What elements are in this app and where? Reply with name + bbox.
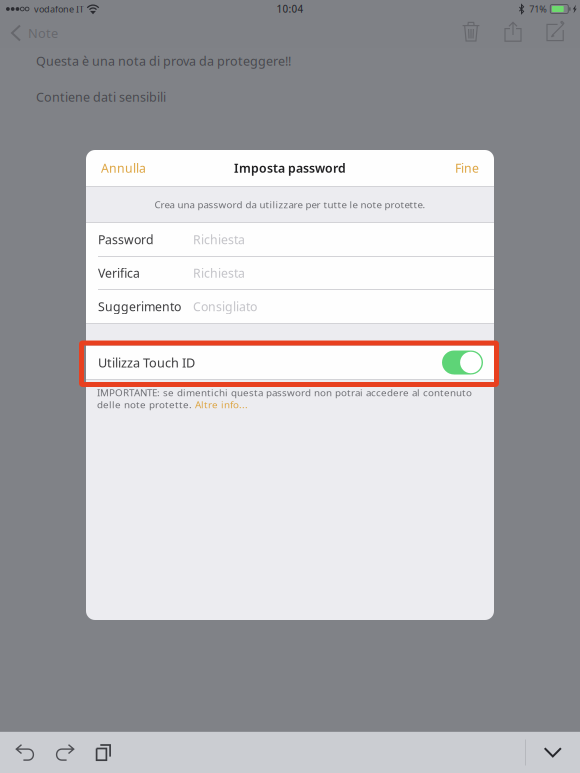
- staticText: Suggerimento: [98, 298, 181, 315]
- button[interactable]: Undo: [6, 732, 45, 773]
- staticText: Utilizza Touch ID: [98, 354, 195, 371]
- button[interactable]: Hide keyboard: [526, 732, 580, 773]
- staticText: vodafone IT: [34, 3, 84, 15]
- staticText: 10:04: [276, 2, 303, 15]
- staticText: Imposta password: [234, 160, 346, 176]
- staticText: Altre info...: [195, 398, 248, 411]
- staticText: Contiene dati sensibili: [36, 89, 166, 105]
- button[interactable]: Redo: [45, 732, 84, 773]
- button[interactable]: Delete note: [450, 18, 492, 48]
- staticText: Verifica: [98, 265, 140, 281]
- staticText: 71%: [529, 3, 547, 15]
- staticText: Questa è una nota di prova da proteggere…: [36, 52, 291, 69]
- button[interactable]: Share: [492, 18, 534, 48]
- staticText: Consigliato: [193, 298, 257, 315]
- staticText: delle note protette.: [97, 398, 195, 411]
- staticText: Richiesta: [193, 265, 245, 281]
- button[interactable]: New note: [534, 18, 577, 48]
- staticText: Richiesta: [193, 231, 245, 248]
- staticText: Note: [28, 24, 58, 41]
- button[interactable]: Paste: [84, 732, 123, 773]
- staticText: Fine: [455, 160, 479, 176]
- button[interactable]: Fine: [440, 150, 494, 186]
- staticText: Annulla: [101, 160, 146, 176]
- staticText: Crea una password da utilizzare per tutt…: [154, 198, 425, 211]
- button[interactable]: Utilizza Touch ID: [86, 346, 494, 379]
- button[interactable]: Note: [0, 18, 68, 48]
- button[interactable]: Altre info...: [195, 398, 248, 411]
- staticText: Password: [98, 231, 154, 248]
- staticText: IMPORTANTE: se dimentichi questa passwor…: [97, 386, 472, 399]
- button[interactable]: Annulla: [86, 150, 161, 186]
